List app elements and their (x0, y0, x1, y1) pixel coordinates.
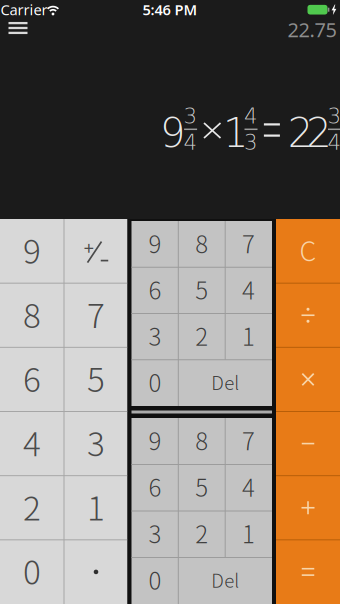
staticText: C (299, 230, 316, 269)
staticText: 4 (327, 130, 340, 155)
button[interactable]: Subtract (276, 412, 340, 476)
button[interactable]: 6 (131, 267, 178, 313)
staticText: 5:46 PM (142, 0, 197, 19)
staticText: 1 (87, 482, 105, 530)
staticText: 4 (242, 272, 255, 306)
button[interactable]: C (276, 219, 340, 283)
staticText: 22.75 (287, 16, 336, 43)
staticText: 1 (242, 318, 255, 353)
staticText: 5 (195, 272, 208, 306)
button[interactable]: 9 (0, 219, 64, 283)
button[interactable]: 9 (131, 221, 178, 267)
button[interactable]: 1 (64, 476, 128, 540)
staticText: 2 (23, 482, 41, 530)
staticText: 6 (148, 272, 161, 306)
staticText: 3 (87, 418, 105, 466)
button[interactable]: 3 (131, 313, 178, 360)
button[interactable]: 8 (178, 418, 225, 464)
staticText: 2 (195, 318, 208, 353)
staticText: 3 (148, 515, 161, 550)
staticText: 4 (244, 104, 258, 128)
button[interactable]: Del (178, 557, 272, 604)
staticText: 2 (195, 515, 208, 550)
button[interactable]: 8 (178, 221, 225, 267)
button[interactable]: 5 (64, 347, 128, 411)
staticText: 0 (23, 546, 41, 594)
staticText: Del (211, 368, 239, 395)
button[interactable]: 8 (0, 283, 64, 347)
button[interactable]: 6 (131, 464, 178, 511)
staticText: Del (211, 566, 239, 593)
staticText: 3 (244, 130, 258, 155)
staticText: 3 (327, 104, 340, 128)
button[interactable]: 9 (131, 418, 178, 464)
staticText: 0 (148, 364, 161, 399)
staticText: 1 (242, 515, 255, 550)
staticText: 4 (242, 469, 255, 504)
button[interactable]: 2 (178, 511, 225, 557)
button[interactable]: Equals (276, 540, 340, 604)
staticText: 5 (195, 469, 208, 504)
staticText: 3 (184, 104, 198, 128)
staticText: 7 (242, 225, 255, 260)
staticText: 9 (148, 225, 161, 260)
staticText: Carrier (0, 0, 47, 19)
staticText: 8 (195, 422, 208, 457)
button[interactable]: 5 (178, 464, 225, 511)
button[interactable]: Plus minus (64, 219, 128, 283)
button[interactable]: 0 (0, 540, 64, 604)
button[interactable]: Decimal point (64, 540, 128, 604)
button[interactable]: 7 (64, 283, 128, 347)
staticText: 7 (242, 422, 255, 457)
button[interactable]: 5 (178, 267, 225, 313)
staticText: 9 (160, 110, 185, 156)
button[interactable]: 6 (0, 347, 64, 411)
button[interactable]: 0 (131, 360, 178, 406)
button[interactable]: 2 (178, 313, 225, 360)
staticText: 2 (288, 110, 313, 156)
staticText: 1 (223, 110, 248, 156)
staticText: + (83, 235, 94, 260)
button[interactable]: 1 (225, 511, 272, 557)
button[interactable]: Add (276, 476, 340, 540)
staticText: 2 (306, 110, 331, 156)
staticText: 8 (195, 225, 208, 260)
button[interactable]: Multiply (276, 347, 340, 411)
staticText: 3 (148, 318, 161, 353)
staticText: 6 (23, 353, 41, 402)
button[interactable]: 4 (225, 267, 272, 313)
button[interactable]: 4 (225, 464, 272, 511)
button[interactable]: 7 (225, 418, 272, 464)
staticText: 6 (148, 469, 161, 504)
button[interactable]: 1 (225, 313, 272, 360)
button[interactable]: 7 (225, 221, 272, 267)
button[interactable]: Del (178, 360, 272, 406)
staticText: 9 (23, 225, 41, 273)
staticText: 7 (87, 289, 105, 337)
staticText: 8 (23, 289, 41, 337)
staticText: 0 (148, 562, 161, 597)
button[interactable]: 0 (131, 557, 178, 604)
staticText: 5 (87, 353, 105, 402)
staticText: 9 (148, 422, 161, 457)
button[interactable]: 4 (0, 412, 64, 476)
button[interactable]: 2 (0, 476, 64, 540)
button[interactable]: Menu (5, 17, 31, 39)
button[interactable]: 3 (131, 511, 178, 557)
staticText: 4 (184, 130, 198, 155)
button[interactable]: Divide (276, 283, 340, 347)
button[interactable]: 3 (64, 412, 128, 476)
staticText: 4 (23, 418, 41, 466)
